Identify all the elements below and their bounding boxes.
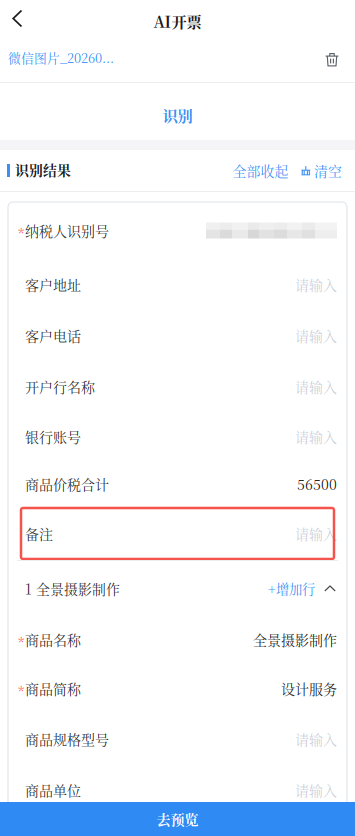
staticText: 识别 (162, 104, 192, 126)
staticText: 去预览 (156, 809, 198, 829)
button[interactable]: Delete (311, 42, 355, 76)
staticText: 请输入 (295, 729, 337, 749)
button[interactable]: 商品规格型号 (8, 714, 347, 764)
staticText: 清空 (314, 160, 342, 180)
button[interactable]: 银行账号 (8, 412, 347, 461)
staticText: * (18, 632, 24, 652)
staticText: 1 全景摄影制作 (25, 578, 120, 598)
button[interactable]: +增加行 (268, 571, 315, 606)
staticText: 识别结果 (15, 159, 71, 179)
button[interactable]: 商品价税合计 (8, 461, 347, 507)
button[interactable]: 微信图片_20260... (0, 44, 124, 75)
staticText: 请输入 (295, 780, 337, 800)
staticText: 请输入 (295, 426, 337, 446)
staticText: 开户行名称 (25, 376, 95, 396)
staticText: 请输入 (295, 523, 337, 543)
button[interactable]: 开户行名称 (8, 361, 347, 412)
button[interactable]: 清空 (301, 152, 342, 188)
button[interactable]: 去预览 (0, 802, 355, 836)
button[interactable]: 客户地址 (8, 259, 347, 310)
button[interactable]: * (8, 202, 347, 259)
staticText: 微信图片_20260... (8, 48, 114, 67)
staticText: +增加行 (268, 579, 315, 598)
button[interactable]: 识别 (0, 83, 355, 140)
staticText: 商品价税合计 (25, 474, 109, 494)
staticText: 备注 (25, 523, 53, 543)
staticText: 全部收起 (233, 160, 289, 180)
staticText: 设计服务 (281, 678, 337, 698)
button[interactable]: 全部收起 (233, 152, 289, 188)
staticText: 商品规格型号 (25, 729, 109, 749)
staticText: 纳税人识别号 (25, 220, 109, 240)
staticText: 56500 (297, 474, 337, 494)
staticText: 请输入 (295, 376, 337, 396)
button[interactable]: 备注 (8, 507, 347, 560)
button[interactable]: 客户电话 (8, 310, 347, 361)
button[interactable]: Back (0, 0, 37, 36)
staticText: AI开票 (153, 10, 201, 32)
staticText: 商品简称 (25, 678, 81, 698)
button[interactable]: 商品单位 (8, 764, 347, 816)
staticText: 请输入 (295, 325, 337, 345)
staticText: 商品单位 (25, 780, 81, 800)
staticText: 客户地址 (25, 274, 81, 294)
staticText: * (18, 223, 24, 243)
staticText: 商品名称 (25, 629, 81, 649)
staticText: 全景摄影制作 (253, 629, 337, 649)
staticText: 银行账号 (25, 426, 81, 446)
button[interactable]: Collapse section (324, 575, 336, 602)
staticText: 请输入 (295, 274, 337, 294)
staticText: 客户电话 (25, 325, 81, 345)
staticText: * (18, 681, 24, 701)
button[interactable]: * (8, 616, 347, 663)
button[interactable]: * (8, 663, 347, 714)
